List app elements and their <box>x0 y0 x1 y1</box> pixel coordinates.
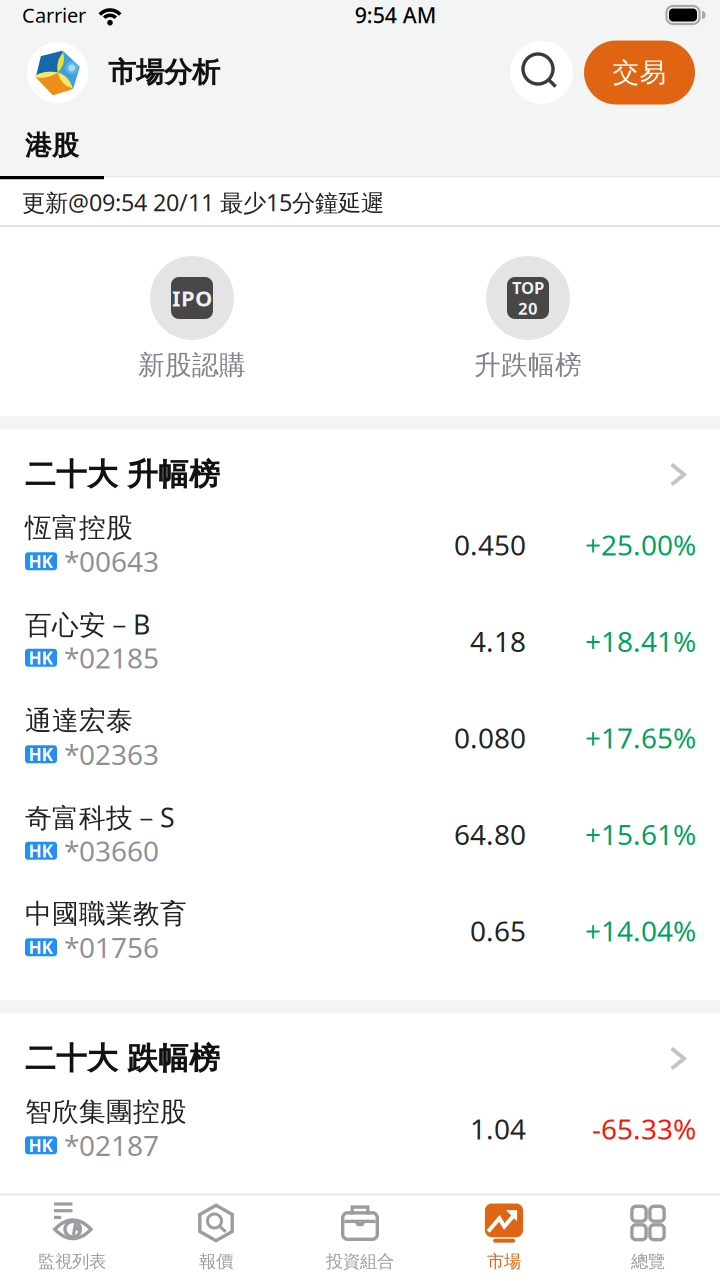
staticText: 升跌幅榜 <box>474 348 582 382</box>
staticText: 總覽 <box>631 1251 665 1272</box>
staticText: 市場 <box>487 1251 521 1272</box>
staticText: 更新@09:54 20/11 最少15分鐘延遲 <box>22 186 384 218</box>
staticText: *00643 <box>64 542 159 580</box>
button[interactable]: 交易 <box>584 40 695 104</box>
staticText: +25.00% <box>585 526 696 564</box>
staticText: +14.04% <box>585 912 696 950</box>
staticText: 市場分析 <box>108 55 220 90</box>
staticText: HK <box>28 839 53 862</box>
staticText: HK <box>28 742 53 766</box>
button[interactable]: IPO <box>24 256 360 380</box>
button[interactable]: 二十大 跌幅榜 <box>0 1013 720 1080</box>
staticText: 0.080 <box>454 719 526 757</box>
staticText: HK <box>28 646 53 669</box>
staticText: *02363 <box>64 735 159 773</box>
staticText: 9:54 AM <box>355 0 437 30</box>
staticText: *02185 <box>64 639 159 677</box>
staticText: IPO <box>172 283 212 313</box>
staticText: *01756 <box>64 928 159 966</box>
staticText: 智欣集團控股 <box>25 1095 187 1129</box>
staticText: 20 <box>518 297 538 320</box>
button[interactable]: 百心安－B <box>0 593 720 689</box>
button[interactable]: 中國職業教育 <box>0 882 720 979</box>
staticText: 二十大 跌幅榜 <box>25 1039 220 1078</box>
staticText: HK <box>28 549 53 573</box>
staticText: 1.04 <box>470 1110 526 1148</box>
staticText: 奇富科技－S <box>25 799 175 835</box>
staticText: 二十大 升幅榜 <box>25 455 220 494</box>
staticText: 報價 <box>199 1251 233 1272</box>
staticText: +15.61% <box>585 815 696 853</box>
button[interactable]: TOP <box>360 256 696 380</box>
staticText: -65.33% <box>592 1110 696 1148</box>
button[interactable]: 智欣集團控股 <box>0 1080 720 1177</box>
staticText: TOP <box>512 276 544 299</box>
button[interactable]: 恆富控股 <box>0 496 720 593</box>
staticText: 0.65 <box>470 912 526 950</box>
button[interactable]: 港股 <box>0 115 720 176</box>
staticText: HK <box>28 935 53 959</box>
staticText: *03660 <box>64 832 159 870</box>
button[interactable]: 二十大 升幅榜 <box>0 429 720 496</box>
staticText: HK <box>28 1133 53 1157</box>
staticText: 0.450 <box>454 526 526 564</box>
staticText: 通達宏泰 <box>25 704 133 738</box>
staticText: 港股 <box>25 129 79 162</box>
staticText: 4.18 <box>470 622 526 660</box>
staticText: *02187 <box>64 1126 159 1164</box>
button[interactable]: 市場 <box>432 1195 576 1280</box>
staticText: 監視列表 <box>38 1251 106 1272</box>
button[interactable]: 投資組合 <box>288 1195 432 1280</box>
button[interactable]: 監視列表 <box>0 1195 144 1280</box>
staticText: +17.65% <box>585 719 696 757</box>
staticText: 百心安－B <box>25 606 150 642</box>
staticText: 新股認購 <box>138 348 246 382</box>
staticText: 恆富控股 <box>25 511 133 545</box>
button[interactable]: 總覽 <box>576 1195 720 1280</box>
staticText: 投資組合 <box>326 1251 394 1272</box>
staticText: Carrier <box>22 1 86 29</box>
button[interactable]: 報價 <box>144 1195 288 1280</box>
button[interactable]: 奇富科技－S <box>0 786 720 882</box>
staticText: 64.80 <box>454 815 526 853</box>
staticText: 交易 <box>612 56 666 89</box>
button[interactable]: 通達宏泰 <box>0 689 720 786</box>
button[interactable]: Search <box>510 41 573 104</box>
staticText: +18.41% <box>585 622 696 660</box>
staticText: 中國職業教育 <box>25 897 187 931</box>
